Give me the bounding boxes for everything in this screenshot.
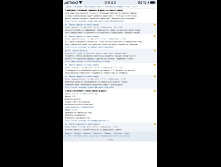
staticText: Отличные новости, спасибо большое за про… bbox=[64, 128, 122, 131]
staticText: Tele2 bbox=[69, 0, 78, 5]
staticText: исправлены ошибки вложений bbox=[64, 103, 92, 105]
staticText: тем в период работ и сохранятся ли вложе… bbox=[64, 31, 140, 34]
staticText: изменений будет опубликован отдельной те… bbox=[64, 83, 123, 86]
staticText: Версия 3.2.0 bbox=[64, 109, 76, 111]
staticText: Автор: Елена • 13 мар 2018, 09:12 • Сооб… bbox=[64, 126, 117, 128]
staticText: Список изменений в новой версии форума bbox=[64, 89, 106, 92]
staticText: Уважаемые пользователи! В связи с планов… bbox=[64, 12, 136, 14]
staticText: Главная » Форумы » Обсуждение сайта » Те… bbox=[64, 5, 137, 8]
staticText: Версия 3.2.1 bbox=[64, 95, 75, 97]
staticText: Подскажите, будет ли доступен архив стар… bbox=[64, 52, 127, 54]
staticText: исправлена сортировка тем bbox=[64, 117, 89, 119]
staticText: добавлены уведомления bbox=[64, 114, 85, 116]
staticText: После завершения работ все прежние ссылк… bbox=[64, 43, 138, 45]
staticText: http://forum.example.ru/viewtopic.php?f=… bbox=[64, 86, 113, 88]
staticText: Новости • Форум • Правила • Контакты • П… bbox=[64, 132, 129, 134]
staticText: новый редактор и предпросмотр bbox=[64, 106, 93, 108]
staticText: http://forum.example.ru/viewtopic.php?f=… bbox=[64, 20, 123, 22]
staticText: хранится на отдельном сервере в другом д… bbox=[64, 57, 134, 60]
staticText: на новый сервер ресурс будет временно не… bbox=[64, 14, 137, 17]
staticText: ускорен поиск по разделам bbox=[64, 100, 89, 103]
staticText: http://forum.example.ru/changelog.php?ve… bbox=[64, 119, 109, 122]
staticText: Re: Список изменений в новой версии bbox=[64, 123, 99, 125]
staticText: Большое спасибо за информацию! Подскажит… bbox=[64, 29, 140, 31]
staticText: © 2011—2018 Все права защищены. Копирова… bbox=[64, 135, 130, 137]
staticText: Версия 3.2.1 от 10 марта 2018 года bbox=[64, 92, 97, 95]
staticText: обновлён движок bbox=[64, 98, 80, 100]
staticText: Автор: Михаил • 12 мар 2018, 16:40 • Соо… bbox=[64, 66, 122, 69]
staticText: Re: Перенос форума на новый сервер bbox=[64, 35, 98, 37]
staticText: http://blog.example.ru/2018/03/backup-st… bbox=[64, 60, 109, 62]
staticText: новый редактор сообщений и поддержку тём… bbox=[64, 72, 128, 74]
staticText: Просим заранее сохранить черновики сообщ… bbox=[64, 17, 135, 19]
staticText: Автор: Администратор • 12 мар 2018, 15:0… bbox=[64, 38, 125, 40]
staticText: Цитата: Сергей писал(а): bbox=[64, 49, 88, 52]
staticText: Re: Перенос форума на новый сервер bbox=[64, 64, 98, 66]
staticText: 94% bbox=[138, 0, 147, 5]
staticText: Разумеется. Полная резервная копия базы … bbox=[64, 55, 135, 57]
staticText: Да, архив сохраняется полностью, включая… bbox=[64, 40, 143, 43]
staticText: 09:42 bbox=[105, 0, 116, 5]
staticText: на верх bbox=[106, 138, 113, 141]
staticText: Re: Перенос форума на новый сервер bbox=[64, 75, 98, 77]
staticText: Сообщение о плановом переносе форума на … bbox=[64, 9, 122, 11]
staticText: А планируется ли обновление движка до ве… bbox=[64, 69, 135, 71]
staticText: Автор: Сергей • 12 мар 2018, 14:28 • Соо… bbox=[64, 26, 122, 28]
staticText: Автор: Администратор • 12 мар 2018, 17:1… bbox=[64, 78, 125, 80]
staticText: http://forum.example.ru/feedback.php?mod… bbox=[64, 46, 113, 48]
staticText: Обновление движка запланировано на следу… bbox=[64, 81, 127, 83]
staticText: переработана мобильная тема bbox=[64, 111, 91, 114]
staticText: Re: Перенос форума на новый сервер bbox=[64, 23, 98, 26]
